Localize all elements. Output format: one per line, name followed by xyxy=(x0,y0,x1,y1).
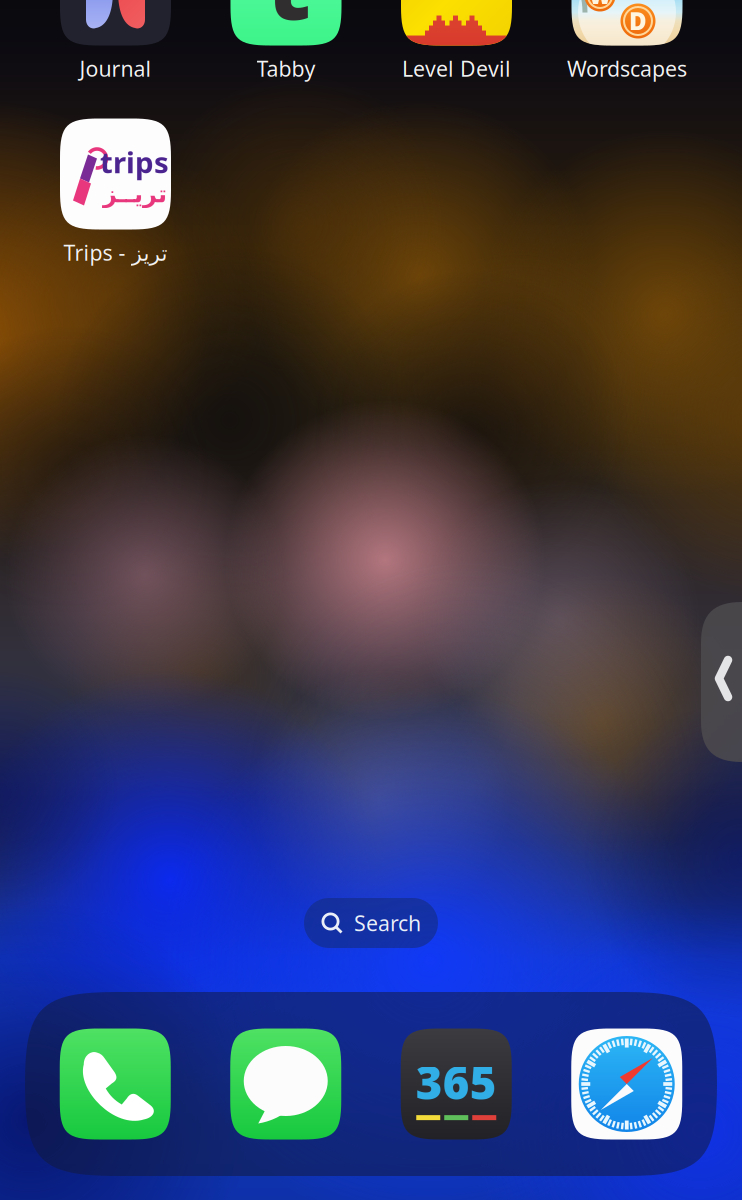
staticText: 365 xyxy=(416,1052,497,1112)
staticText: Search xyxy=(354,909,421,937)
button[interactable]: 365Scores xyxy=(401,1028,512,1139)
button[interactable]: trips xyxy=(15,118,215,266)
staticText: D xyxy=(629,5,647,37)
staticText: Level Devil xyxy=(402,54,511,83)
staticText: Tabby xyxy=(256,54,315,83)
staticText: Journal xyxy=(79,54,151,83)
button[interactable]: W xyxy=(527,0,727,82)
staticText: تريــز xyxy=(102,180,166,208)
button[interactable]: Safari xyxy=(571,1028,682,1139)
button[interactable]: Back xyxy=(701,602,742,762)
button[interactable]: Phone xyxy=(60,1028,171,1139)
button[interactable]: t xyxy=(186,0,386,82)
staticText: Wordscapes xyxy=(567,54,687,83)
staticText: Trips - تريز xyxy=(63,238,167,267)
button[interactable]: Messages xyxy=(230,1028,341,1139)
staticText: t xyxy=(265,0,311,49)
staticText: W xyxy=(589,0,611,10)
staticText: trips xyxy=(100,142,169,181)
button[interactable]: Search xyxy=(304,898,438,948)
button[interactable]: Journal xyxy=(15,0,215,82)
button[interactable]: Level Devil xyxy=(356,0,556,82)
